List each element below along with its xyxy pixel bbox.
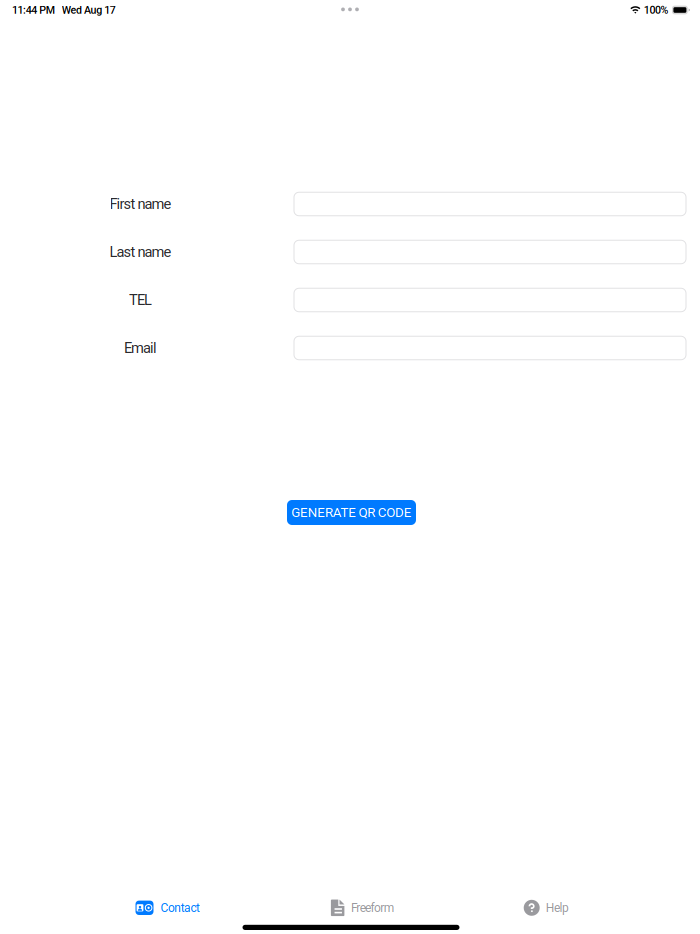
button[interactable]: Freeform xyxy=(328,894,398,922)
staticText: First name xyxy=(109,195,171,213)
staticText: Help xyxy=(546,901,569,915)
staticText: GENERATE QR CODE xyxy=(291,505,412,520)
button[interactable]: TEL xyxy=(294,288,686,312)
button[interactable]: Contact xyxy=(132,894,203,922)
staticText: 100% xyxy=(644,4,668,16)
button[interactable]: Email xyxy=(294,336,686,360)
button[interactable]: Help xyxy=(521,894,572,922)
staticText: 11:44 PM xyxy=(12,4,55,16)
staticText: Last name xyxy=(109,243,171,261)
staticText: Email xyxy=(124,339,157,357)
button[interactable]: First name xyxy=(294,192,686,216)
staticText: Contact xyxy=(160,901,200,915)
button[interactable]: GENERATE QR CODE xyxy=(287,500,416,525)
staticText: Wed Aug 17 xyxy=(62,4,116,16)
staticText: Freeform xyxy=(351,901,395,915)
button[interactable]: Last name xyxy=(294,240,686,264)
staticText: TEL xyxy=(129,291,152,309)
